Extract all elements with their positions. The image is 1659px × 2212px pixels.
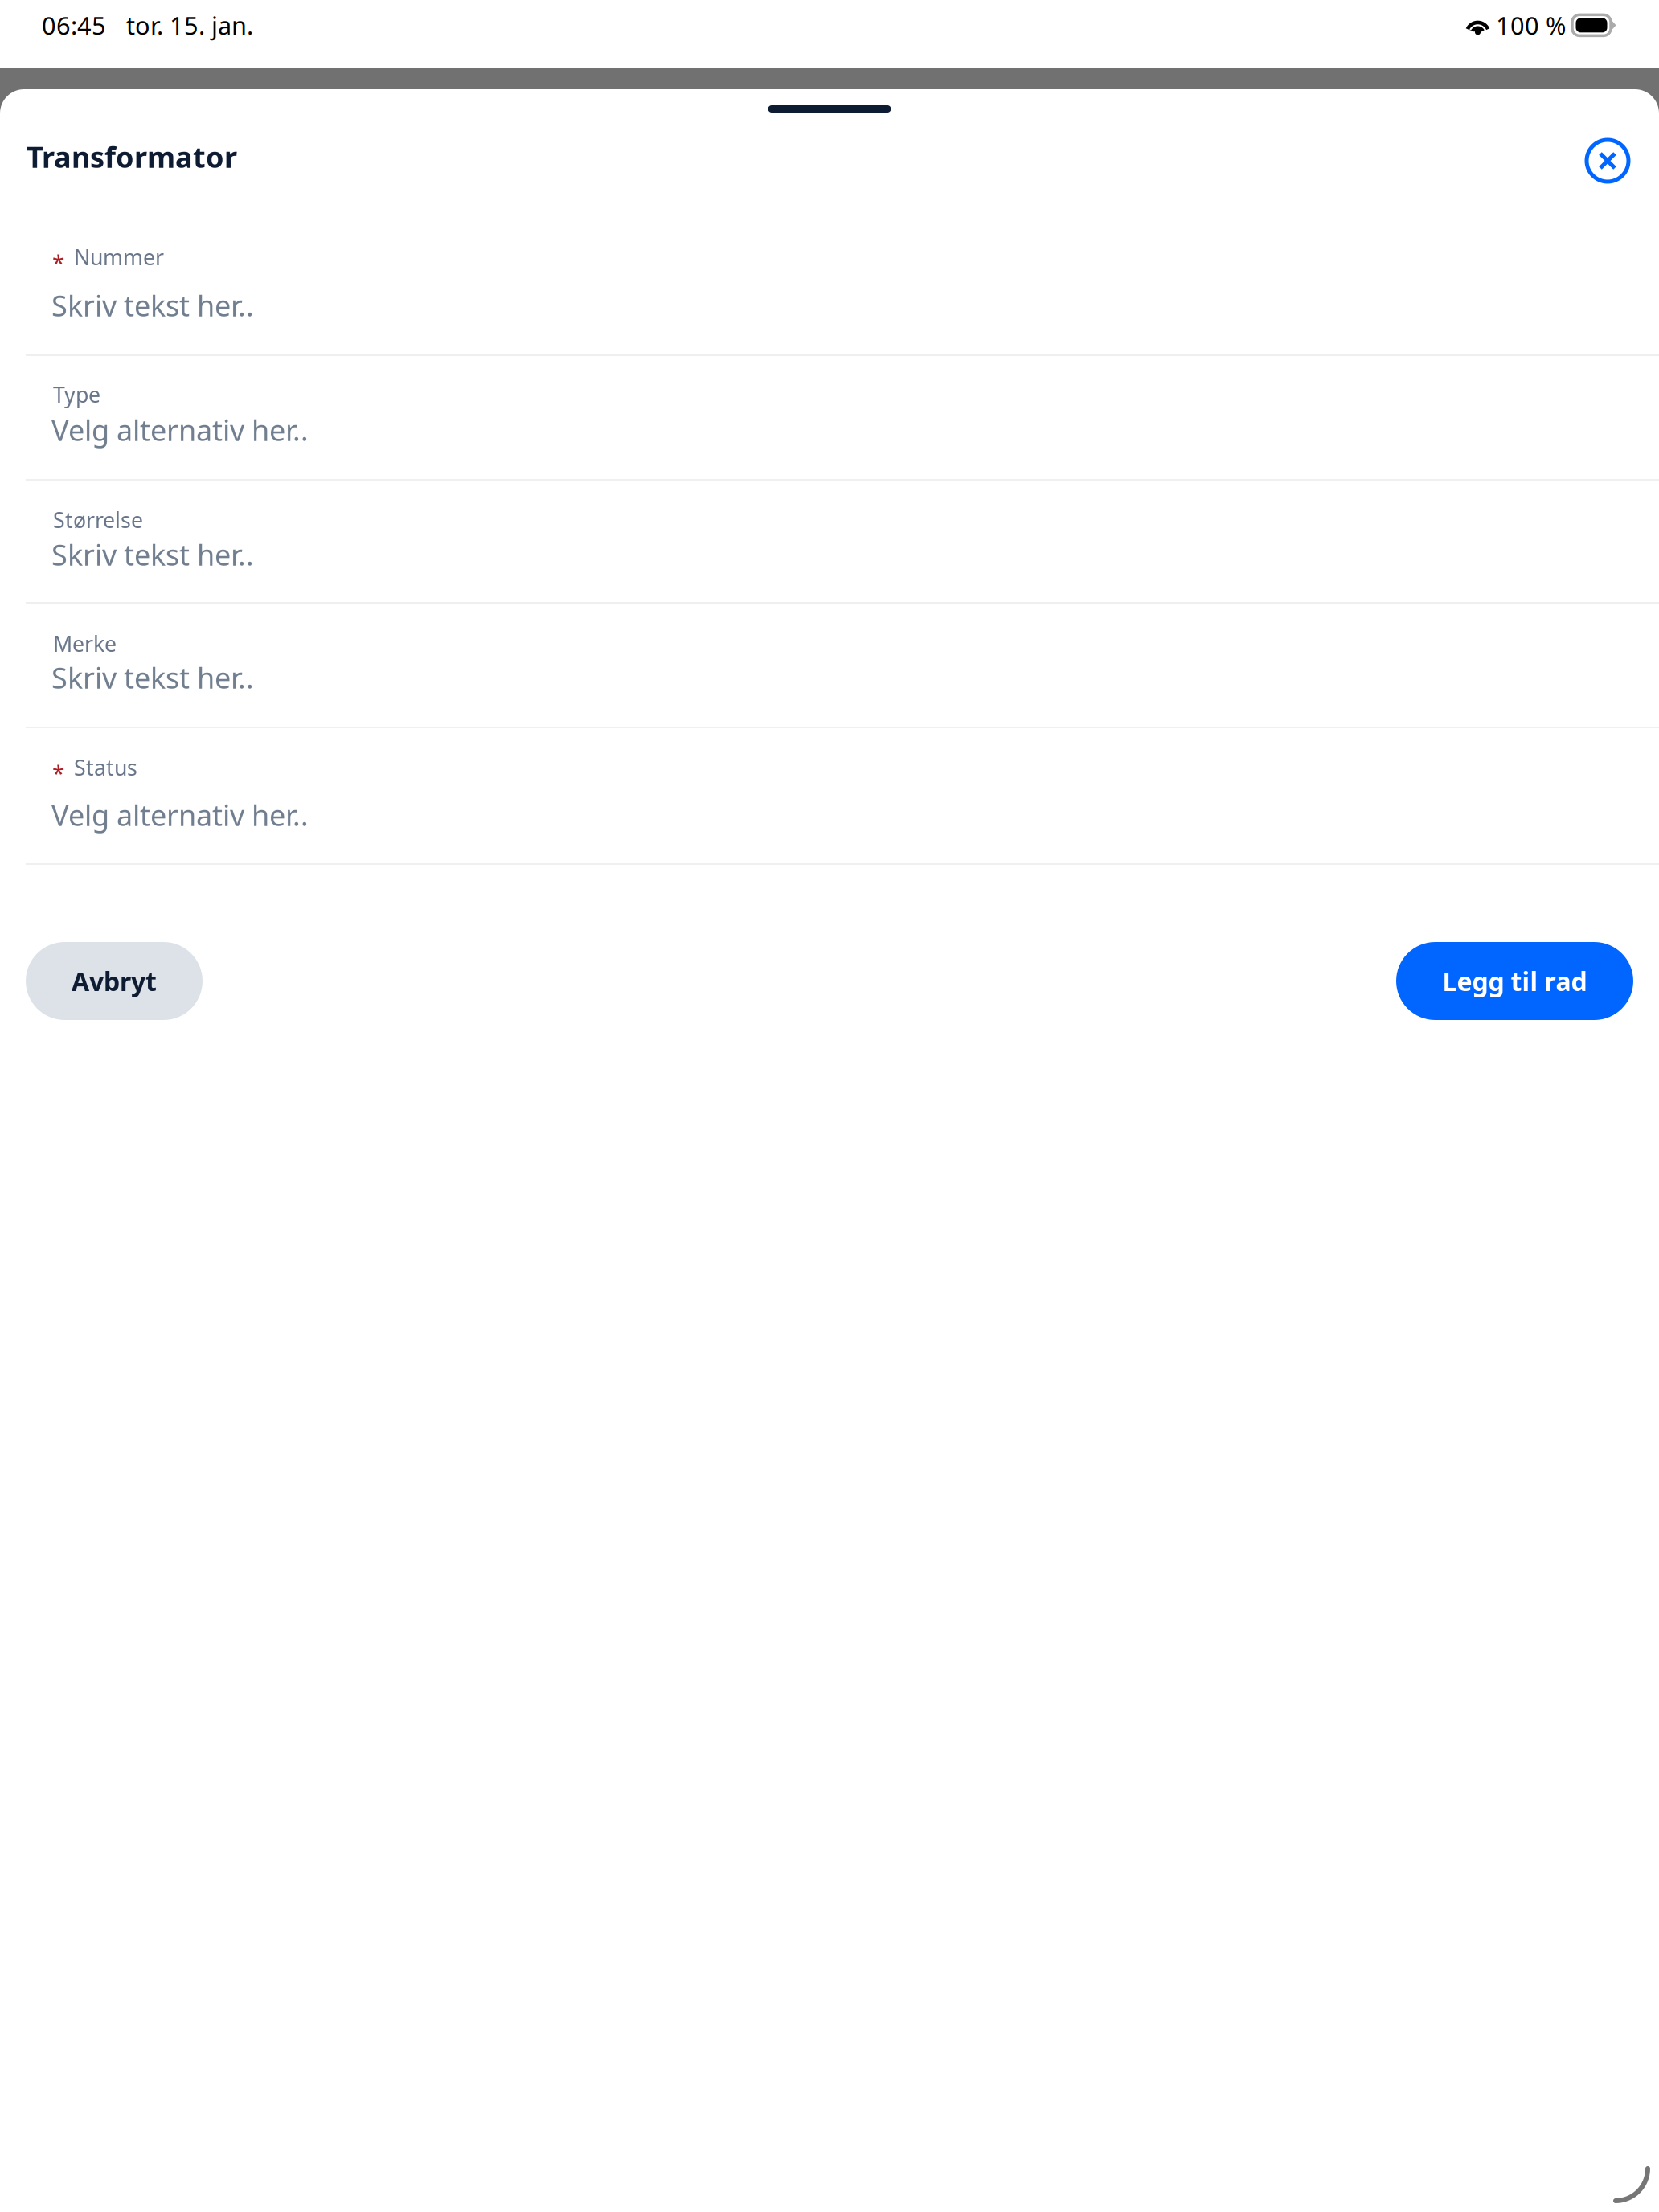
staticText: Velg alternativ her..: [51, 796, 309, 834]
staticText: *: [52, 758, 64, 788]
staticText: Type: [53, 380, 100, 409]
staticText: *: [52, 248, 64, 277]
staticText: 06:45: [42, 9, 106, 42]
staticText: Skriv tekst her..: [51, 286, 254, 325]
staticText: Transformator: [27, 137, 237, 176]
button[interactable]: Type: [0, 356, 1659, 481]
staticText: Merke: [53, 629, 117, 658]
staticText: Legg til rad: [1442, 964, 1587, 998]
staticText: Avbryt: [72, 964, 157, 998]
button[interactable]: Nummer: [0, 219, 1659, 356]
button[interactable]: Status: [0, 728, 1659, 865]
button[interactable]: Lukk: [1582, 135, 1633, 186]
staticText: Status: [74, 753, 137, 782]
staticText: Størrelse: [53, 506, 143, 534]
staticText: Nummer: [74, 243, 164, 271]
staticText: Skriv tekst her..: [51, 658, 254, 697]
button[interactable]: Størrelse: [0, 481, 1659, 604]
staticText: 100 %: [1496, 9, 1566, 42]
staticText: tor. 15. jan.: [126, 9, 253, 42]
button[interactable]: Avbryt: [26, 942, 203, 1020]
button[interactable]: Legg til rad: [1396, 942, 1633, 1020]
staticText: Velg alternativ her..: [51, 411, 309, 449]
button[interactable]: Merke: [0, 604, 1659, 728]
staticText: Skriv tekst her..: [51, 535, 254, 574]
